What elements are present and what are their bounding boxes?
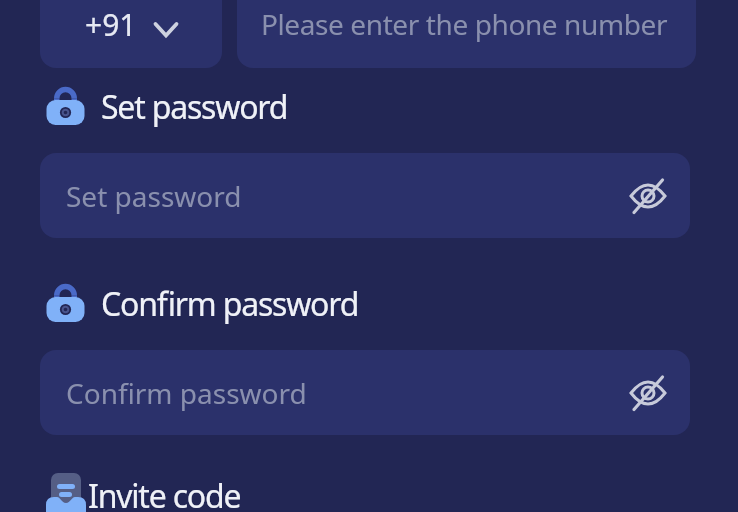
button[interactable]: +91	[40, 0, 222, 68]
button[interactable]: Confirm password	[40, 350, 690, 435]
staticText: +91	[85, 4, 137, 45]
staticText: Invite code	[88, 474, 241, 512]
button[interactable]	[628, 176, 668, 216]
staticText: Confirm password	[101, 282, 359, 326]
button[interactable]	[628, 373, 668, 413]
staticText: Set password	[66, 177, 242, 215]
staticText: Please enter the phone number	[261, 5, 668, 43]
staticText: Confirm password	[66, 374, 307, 412]
staticText: Set password	[101, 85, 288, 129]
button[interactable]: Set password	[40, 153, 690, 238]
button[interactable]: Please enter the phone number	[237, 0, 696, 68]
